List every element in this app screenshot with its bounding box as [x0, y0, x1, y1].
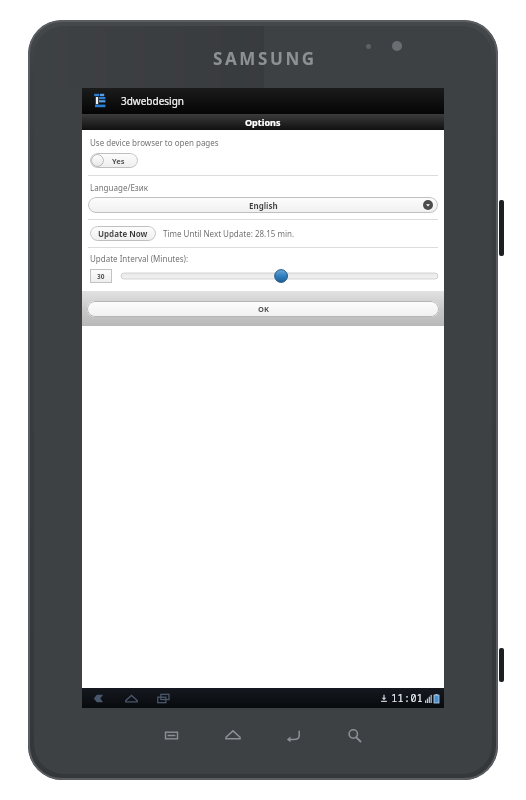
- button[interactable]: Back: [88, 689, 110, 707]
- button[interactable]: Yes: [90, 153, 138, 168]
- staticText: Use device browser to open pages: [90, 137, 219, 148]
- staticText: Time Until Next Update: 28.15 min.: [163, 228, 295, 239]
- staticText: English: [249, 200, 278, 211]
- button[interactable]: Update Now: [90, 226, 156, 241]
- other: Open language list: [423, 200, 433, 210]
- staticText: OK: [258, 304, 269, 314]
- button[interactable]: OK: [87, 301, 439, 317]
- staticText: Options: [245, 116, 281, 128]
- staticText: SAMSUNG: [213, 47, 317, 70]
- button[interactable]: Recent apps: [152, 689, 174, 707]
- button[interactable]: Back: [263, 722, 324, 748]
- button[interactable]: Home: [202, 722, 263, 748]
- staticText: Update Interval (Minutes):: [90, 253, 189, 264]
- staticText: Yes: [112, 156, 125, 166]
- staticText: 30: [97, 272, 105, 281]
- button[interactable]: Search: [324, 722, 385, 748]
- staticText: 11:01: [391, 691, 423, 705]
- button[interactable]: 30: [90, 269, 112, 283]
- staticText: 3dwebdesign: [121, 94, 185, 108]
- button[interactable]: Menu: [140, 722, 202, 748]
- button[interactable]: English: [88, 197, 438, 213]
- staticText: Language/Език: [90, 182, 148, 193]
- button[interactable]: [121, 268, 438, 284]
- button[interactable]: 3dwebdesign: [82, 88, 444, 114]
- staticText: Update Now: [98, 228, 148, 239]
- button[interactable]: Home: [120, 689, 142, 707]
